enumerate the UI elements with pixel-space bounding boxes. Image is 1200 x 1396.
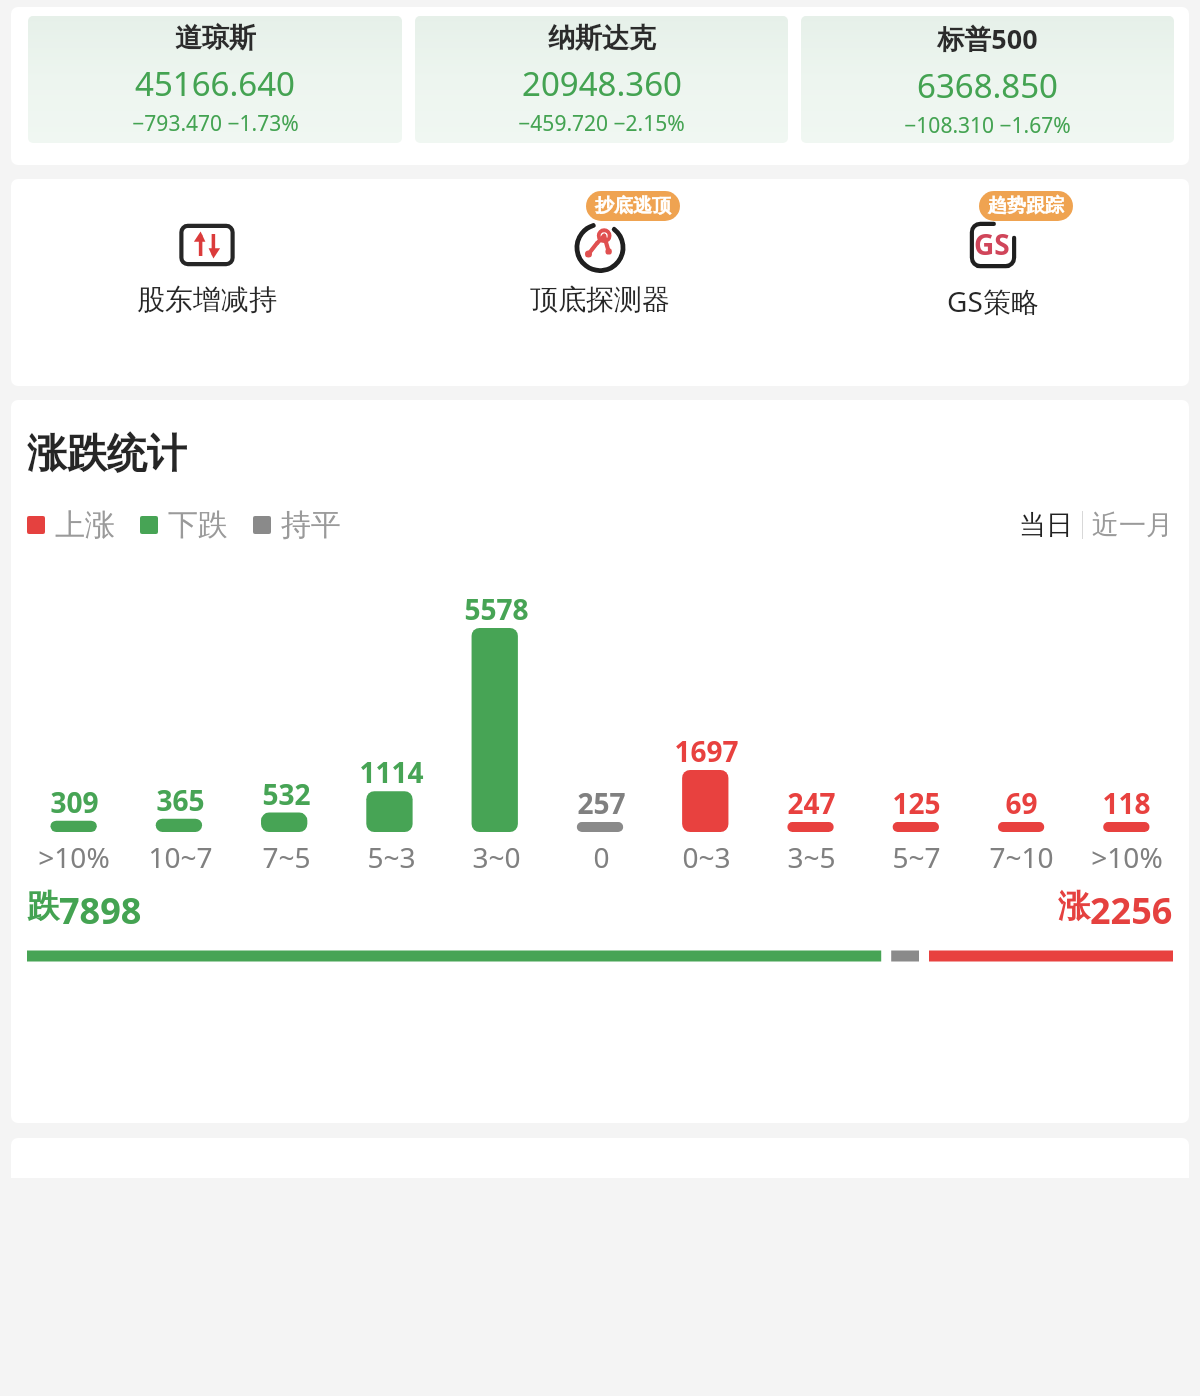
staticText: >10% <box>1091 838 1163 876</box>
button[interactable]: 顶底探测器 <box>403 191 796 317</box>
other: 股东增减持 <box>175 213 239 277</box>
staticText: 532 <box>262 775 311 813</box>
staticText: 涨跌统计 <box>27 428 187 478</box>
staticText: 涨 <box>1058 886 1090 926</box>
button[interactable]: 道琼斯 <box>28 16 402 143</box>
staticText: 下跌 <box>168 506 228 544</box>
staticText: GS策略 <box>947 282 1039 320</box>
staticText: 跌 <box>27 886 59 926</box>
staticText: 5578 <box>464 590 529 628</box>
staticText: 0 <box>593 838 610 876</box>
staticText: 257 <box>577 784 626 822</box>
staticText: 抄底逃顶 <box>595 194 671 218</box>
other: GS策略 <box>961 213 1025 277</box>
staticText: 247 <box>787 784 836 822</box>
other: 顶底探测器 <box>568 213 632 277</box>
staticText: 7898 <box>59 886 142 935</box>
staticText: −108.310 −1.67% <box>904 111 1071 140</box>
staticText: 3~5 <box>787 838 836 876</box>
staticText: GS <box>974 225 1010 263</box>
staticText: −459.720 −2.15% <box>518 109 685 138</box>
staticText: 125 <box>892 784 941 822</box>
button[interactable]: 纳斯达克 <box>415 16 788 143</box>
staticText: 2256 <box>1090 886 1173 935</box>
staticText: 持平 <box>281 506 341 544</box>
staticText: 3~0 <box>472 838 521 876</box>
staticText: 365 <box>156 781 205 819</box>
staticText: 7~10 <box>989 838 1054 876</box>
staticText: 5~7 <box>892 838 941 876</box>
button[interactable]: 标普500 <box>801 16 1174 143</box>
button[interactable]: 近一月 <box>1092 508 1173 542</box>
staticText: 近一月 <box>1092 508 1173 542</box>
staticText: 上涨 <box>55 506 115 544</box>
button[interactable]: 股东增减持 <box>11 191 403 317</box>
staticText: 0~3 <box>682 838 731 876</box>
button[interactable]: 上涨 <box>27 506 115 544</box>
staticText: 当日 <box>1019 508 1073 542</box>
staticText: 7~5 <box>262 838 311 876</box>
staticText: 标普500 <box>937 20 1038 57</box>
staticText: 10~7 <box>148 838 213 876</box>
button[interactable]: GS策略 <box>796 191 1189 320</box>
button[interactable]: 当日 <box>1019 508 1073 542</box>
staticText: 纳斯达克 <box>548 21 656 55</box>
staticText: 顶底探测器 <box>530 282 670 317</box>
staticText: 道琼斯 <box>175 21 256 55</box>
staticText: 69 <box>1005 784 1038 822</box>
staticText: 1697 <box>674 732 739 770</box>
button[interactable]: 持平 <box>253 506 341 544</box>
staticText: 45166.640 <box>135 61 295 106</box>
staticText: 20948.360 <box>522 61 682 106</box>
staticText: 5~3 <box>367 838 416 876</box>
staticText: 股东增减持 <box>137 282 277 317</box>
staticText: >10% <box>38 838 110 876</box>
staticText: −793.470 −1.73% <box>132 109 299 138</box>
button[interactable]: 下跌 <box>140 506 228 544</box>
staticText: 309 <box>50 783 99 821</box>
staticText: 趋势跟踪 <box>988 194 1064 218</box>
staticText: 6368.850 <box>917 63 1058 108</box>
staticText: 1114 <box>359 753 424 791</box>
staticText: 118 <box>1102 784 1151 822</box>
